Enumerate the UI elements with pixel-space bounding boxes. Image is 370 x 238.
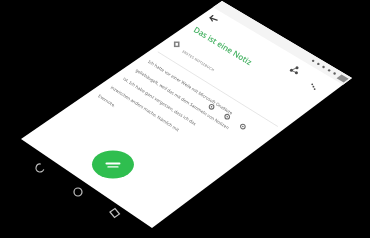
button[interactable]: Note editor <box>0 0 370 238</box>
